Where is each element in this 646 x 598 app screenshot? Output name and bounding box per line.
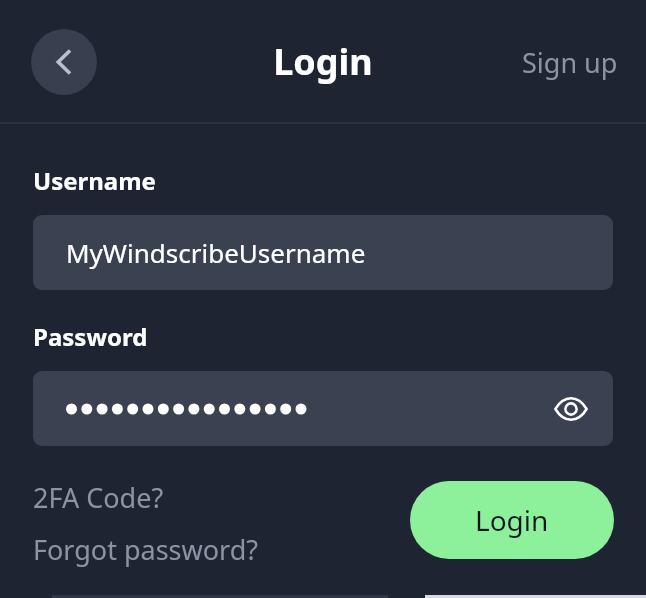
staticText: Login xyxy=(475,501,549,539)
staticText: Sign up xyxy=(522,44,618,81)
button[interactable]: 2FA Code? xyxy=(33,477,164,518)
staticText: Login xyxy=(273,37,373,86)
staticText: 2FA Code? xyxy=(33,479,164,516)
button[interactable]: Sign up xyxy=(518,42,622,83)
staticText: Forgot password? xyxy=(33,531,259,568)
button[interactable]: Login xyxy=(410,481,614,559)
button[interactable]: Back xyxy=(31,29,97,95)
button[interactable]: Show password xyxy=(549,387,593,431)
button[interactable]: MyWindscribeUsername xyxy=(33,215,613,290)
staticText: Password xyxy=(33,320,148,353)
staticText: MyWindscribeUsername xyxy=(66,235,366,270)
button[interactable]: Forgot password? xyxy=(33,529,259,570)
staticText: Username xyxy=(33,164,156,197)
button[interactable]: Show password xyxy=(33,371,613,446)
